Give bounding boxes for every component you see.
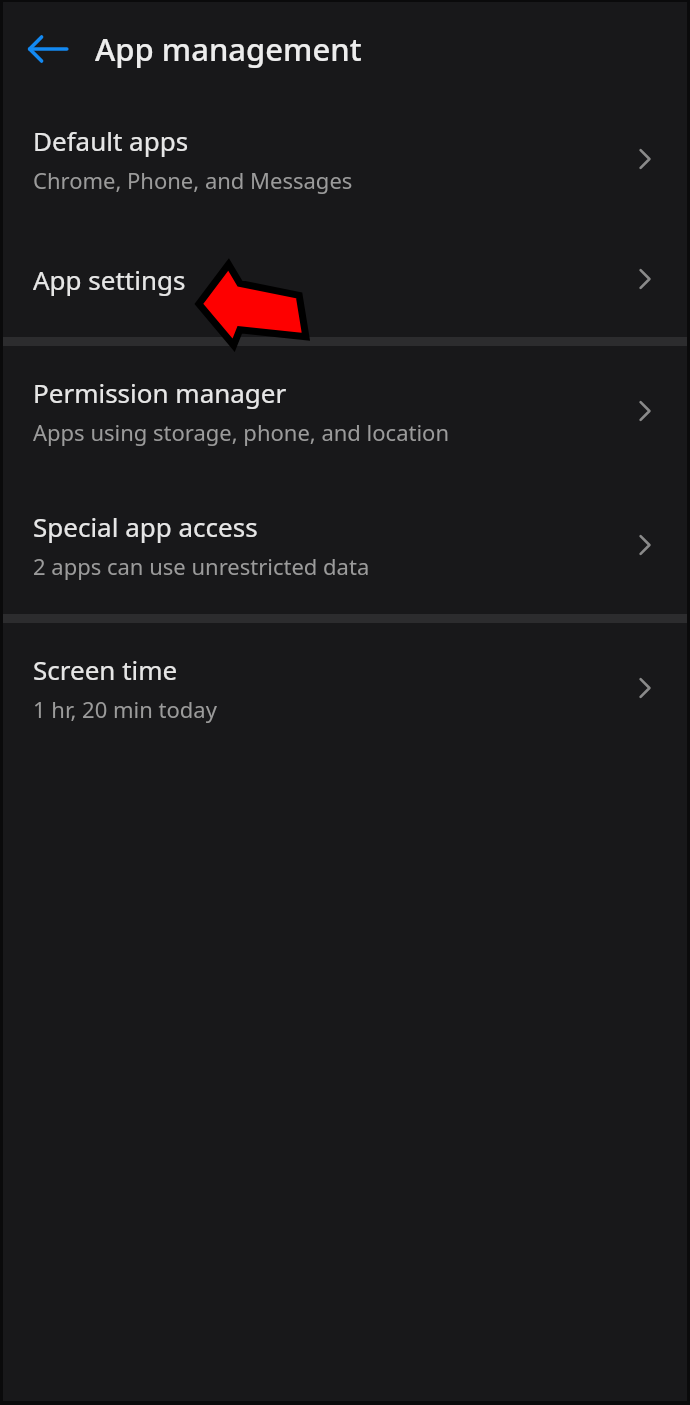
staticText: Chrome, Phone, and Messages <box>33 165 353 195</box>
button[interactable]: Default apps <box>3 96 687 221</box>
button[interactable]: Permission manager <box>3 346 687 476</box>
staticText: Permission manager <box>33 375 287 410</box>
button[interactable]: Screen time <box>3 623 687 753</box>
staticText: App management <box>95 28 362 70</box>
staticText: Screen time <box>33 652 178 687</box>
button[interactable]: App settings <box>3 221 687 337</box>
staticText: 2 apps can use unrestricted data <box>33 551 370 581</box>
staticText: Special app access <box>33 509 258 544</box>
staticText: Default apps <box>33 123 189 158</box>
staticText: App settings <box>33 262 186 297</box>
button[interactable]: Back <box>17 18 79 80</box>
staticText: 1 hr, 20 min today <box>33 694 217 724</box>
button[interactable]: Special app access <box>3 476 687 614</box>
staticText: Apps using storage, phone, and location <box>33 417 450 447</box>
